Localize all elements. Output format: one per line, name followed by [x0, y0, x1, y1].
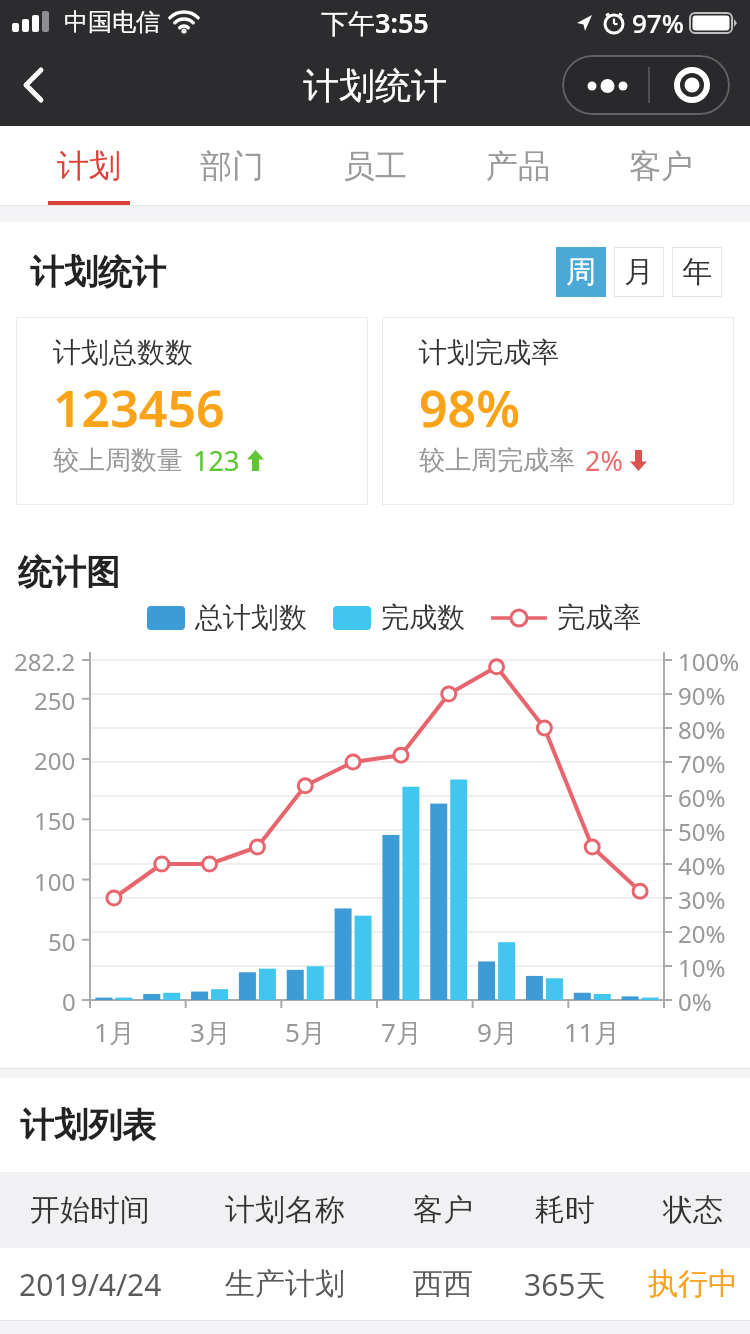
staticText: 80% — [678, 713, 726, 746]
staticText: 总计划数 — [195, 600, 307, 635]
staticText: 计划 — [57, 146, 121, 186]
button[interactable]: 产品 — [446, 126, 589, 205]
staticText: 123456 — [53, 374, 225, 442]
staticText: 3月 — [190, 1014, 231, 1050]
staticText: 98% — [419, 374, 520, 442]
staticText: 1月 — [94, 1014, 135, 1050]
staticText: 耗时 — [535, 1191, 595, 1229]
staticText: 11月 — [564, 1014, 620, 1050]
staticText: 100 — [34, 865, 76, 898]
button[interactable]: 周 — [556, 247, 606, 297]
staticText: 计划名称 — [225, 1191, 345, 1229]
button[interactable]: 客户 — [589, 126, 732, 205]
staticText: 0% — [678, 985, 712, 1018]
staticText: 100% — [678, 645, 740, 678]
staticText: 50% — [678, 815, 726, 848]
staticText: 97% — [632, 5, 684, 40]
staticText: 250 — [34, 684, 76, 717]
staticText: 状态 — [663, 1191, 723, 1229]
button[interactable] — [14, 65, 54, 105]
staticText: 月 — [624, 253, 654, 291]
staticText: 计划统计 — [30, 251, 166, 294]
staticText: 计划总数数 — [53, 335, 193, 370]
staticText: 计划统计 — [303, 63, 447, 108]
staticText: 365天 — [524, 1264, 606, 1305]
staticText: 2019/4/24 — [19, 1264, 162, 1305]
staticText: 7月 — [381, 1014, 422, 1050]
staticText: 282.2 — [14, 645, 76, 678]
staticText: 123 — [193, 442, 240, 479]
staticText: 部门 — [200, 146, 264, 186]
staticText: 40% — [678, 849, 726, 882]
button[interactable]: 计划 — [18, 126, 160, 205]
staticText: 周 — [566, 253, 596, 291]
staticText: 20% — [678, 917, 726, 950]
staticText: 150 — [34, 804, 76, 837]
staticText: 70% — [678, 747, 726, 780]
staticText: 下午3:55 — [321, 4, 429, 41]
staticText: 开始时间 — [30, 1191, 150, 1229]
staticText: 5月 — [285, 1014, 326, 1050]
staticText: 10% — [678, 951, 726, 984]
staticText: 西西 — [413, 1265, 473, 1303]
button[interactable]: 员工 — [303, 126, 446, 205]
staticText: 30% — [678, 883, 726, 916]
staticText: 较上周数量 — [53, 444, 183, 477]
button[interactable]: 2019/4/24 — [0, 1248, 750, 1320]
button[interactable]: 计划完成率 — [382, 317, 734, 505]
staticText: 客户 — [629, 146, 693, 186]
staticText: 60% — [678, 781, 726, 814]
staticText: 50 — [48, 925, 76, 958]
button[interactable] — [562, 55, 730, 115]
staticText: 计划列表 — [20, 1104, 156, 1147]
button[interactable]: 月 — [614, 247, 664, 297]
staticText: 统计图 — [18, 551, 120, 594]
staticText: 年 — [682, 253, 712, 291]
staticText: 计划完成率 — [419, 335, 559, 370]
staticText: 产品 — [486, 146, 550, 186]
staticText: 完成数 — [381, 600, 465, 635]
staticText: 客户 — [413, 1191, 473, 1229]
staticText: 0 — [62, 985, 76, 1018]
button[interactable]: 部门 — [160, 126, 303, 205]
staticText: 200 — [34, 744, 76, 777]
staticText: 完成率 — [557, 600, 641, 635]
button[interactable]: 计划总数数 — [16, 317, 368, 505]
staticText: 2% — [585, 442, 623, 479]
staticText: 90% — [678, 679, 726, 712]
button[interactable]: 年 — [672, 247, 722, 297]
staticText: 9月 — [477, 1014, 518, 1050]
staticText: 生产计划 — [225, 1265, 345, 1303]
staticText: 员工 — [343, 146, 407, 186]
staticText: 中国电信 — [64, 7, 160, 37]
staticText: 执行中 — [648, 1265, 738, 1303]
staticText: 较上周完成率 — [419, 444, 575, 477]
